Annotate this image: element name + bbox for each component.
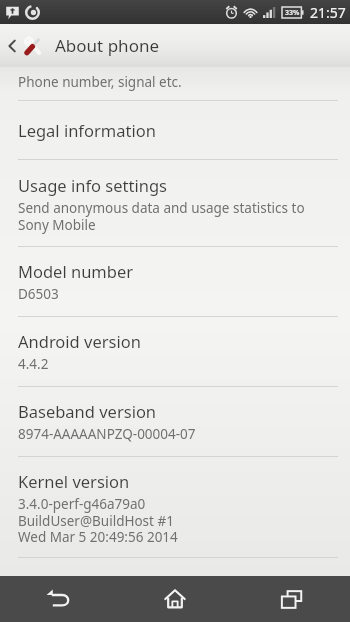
button[interactable]: Legal information bbox=[0, 101, 350, 159]
staticText: Baseband version bbox=[18, 400, 157, 422]
staticText: Android version bbox=[18, 330, 141, 352]
button[interactable]: Model number bbox=[0, 247, 350, 316]
staticText: Kernel version bbox=[18, 470, 130, 492]
button[interactable]: Recent apps bbox=[233, 576, 350, 622]
button[interactable]: Home bbox=[116, 576, 233, 622]
staticText: 8974-AAAAANPZQ-00004-07 bbox=[18, 425, 196, 443]
staticText: D6503 bbox=[18, 285, 59, 303]
staticText: Usage info settings bbox=[18, 174, 167, 196]
staticText: Model number bbox=[18, 260, 134, 282]
staticText: 4.4.2 bbox=[18, 355, 49, 373]
staticText: Phone number, signal etc. bbox=[18, 73, 182, 91]
button[interactable]: Usage info settings bbox=[0, 160, 350, 246]
button[interactable]: Kernel version bbox=[0, 457, 350, 557]
staticText: 3.4.0-perf-g46a79a0 BuildUser@BuildHost … bbox=[18, 495, 178, 546]
button[interactable]: Phone number, signal etc. bbox=[0, 67, 350, 100]
button[interactable]: Android version bbox=[0, 317, 350, 386]
button[interactable]: Back bbox=[0, 576, 116, 622]
staticText: Legal information bbox=[18, 119, 156, 141]
staticText: 33% bbox=[285, 8, 300, 18]
staticText: Send anonymous data and usage statistics… bbox=[18, 199, 305, 234]
button[interactable]: Navigate up bbox=[0, 24, 350, 67]
staticText: About phone bbox=[55, 34, 160, 57]
button[interactable]: Baseband version bbox=[0, 387, 350, 456]
staticText: 21:57 bbox=[310, 3, 346, 22]
